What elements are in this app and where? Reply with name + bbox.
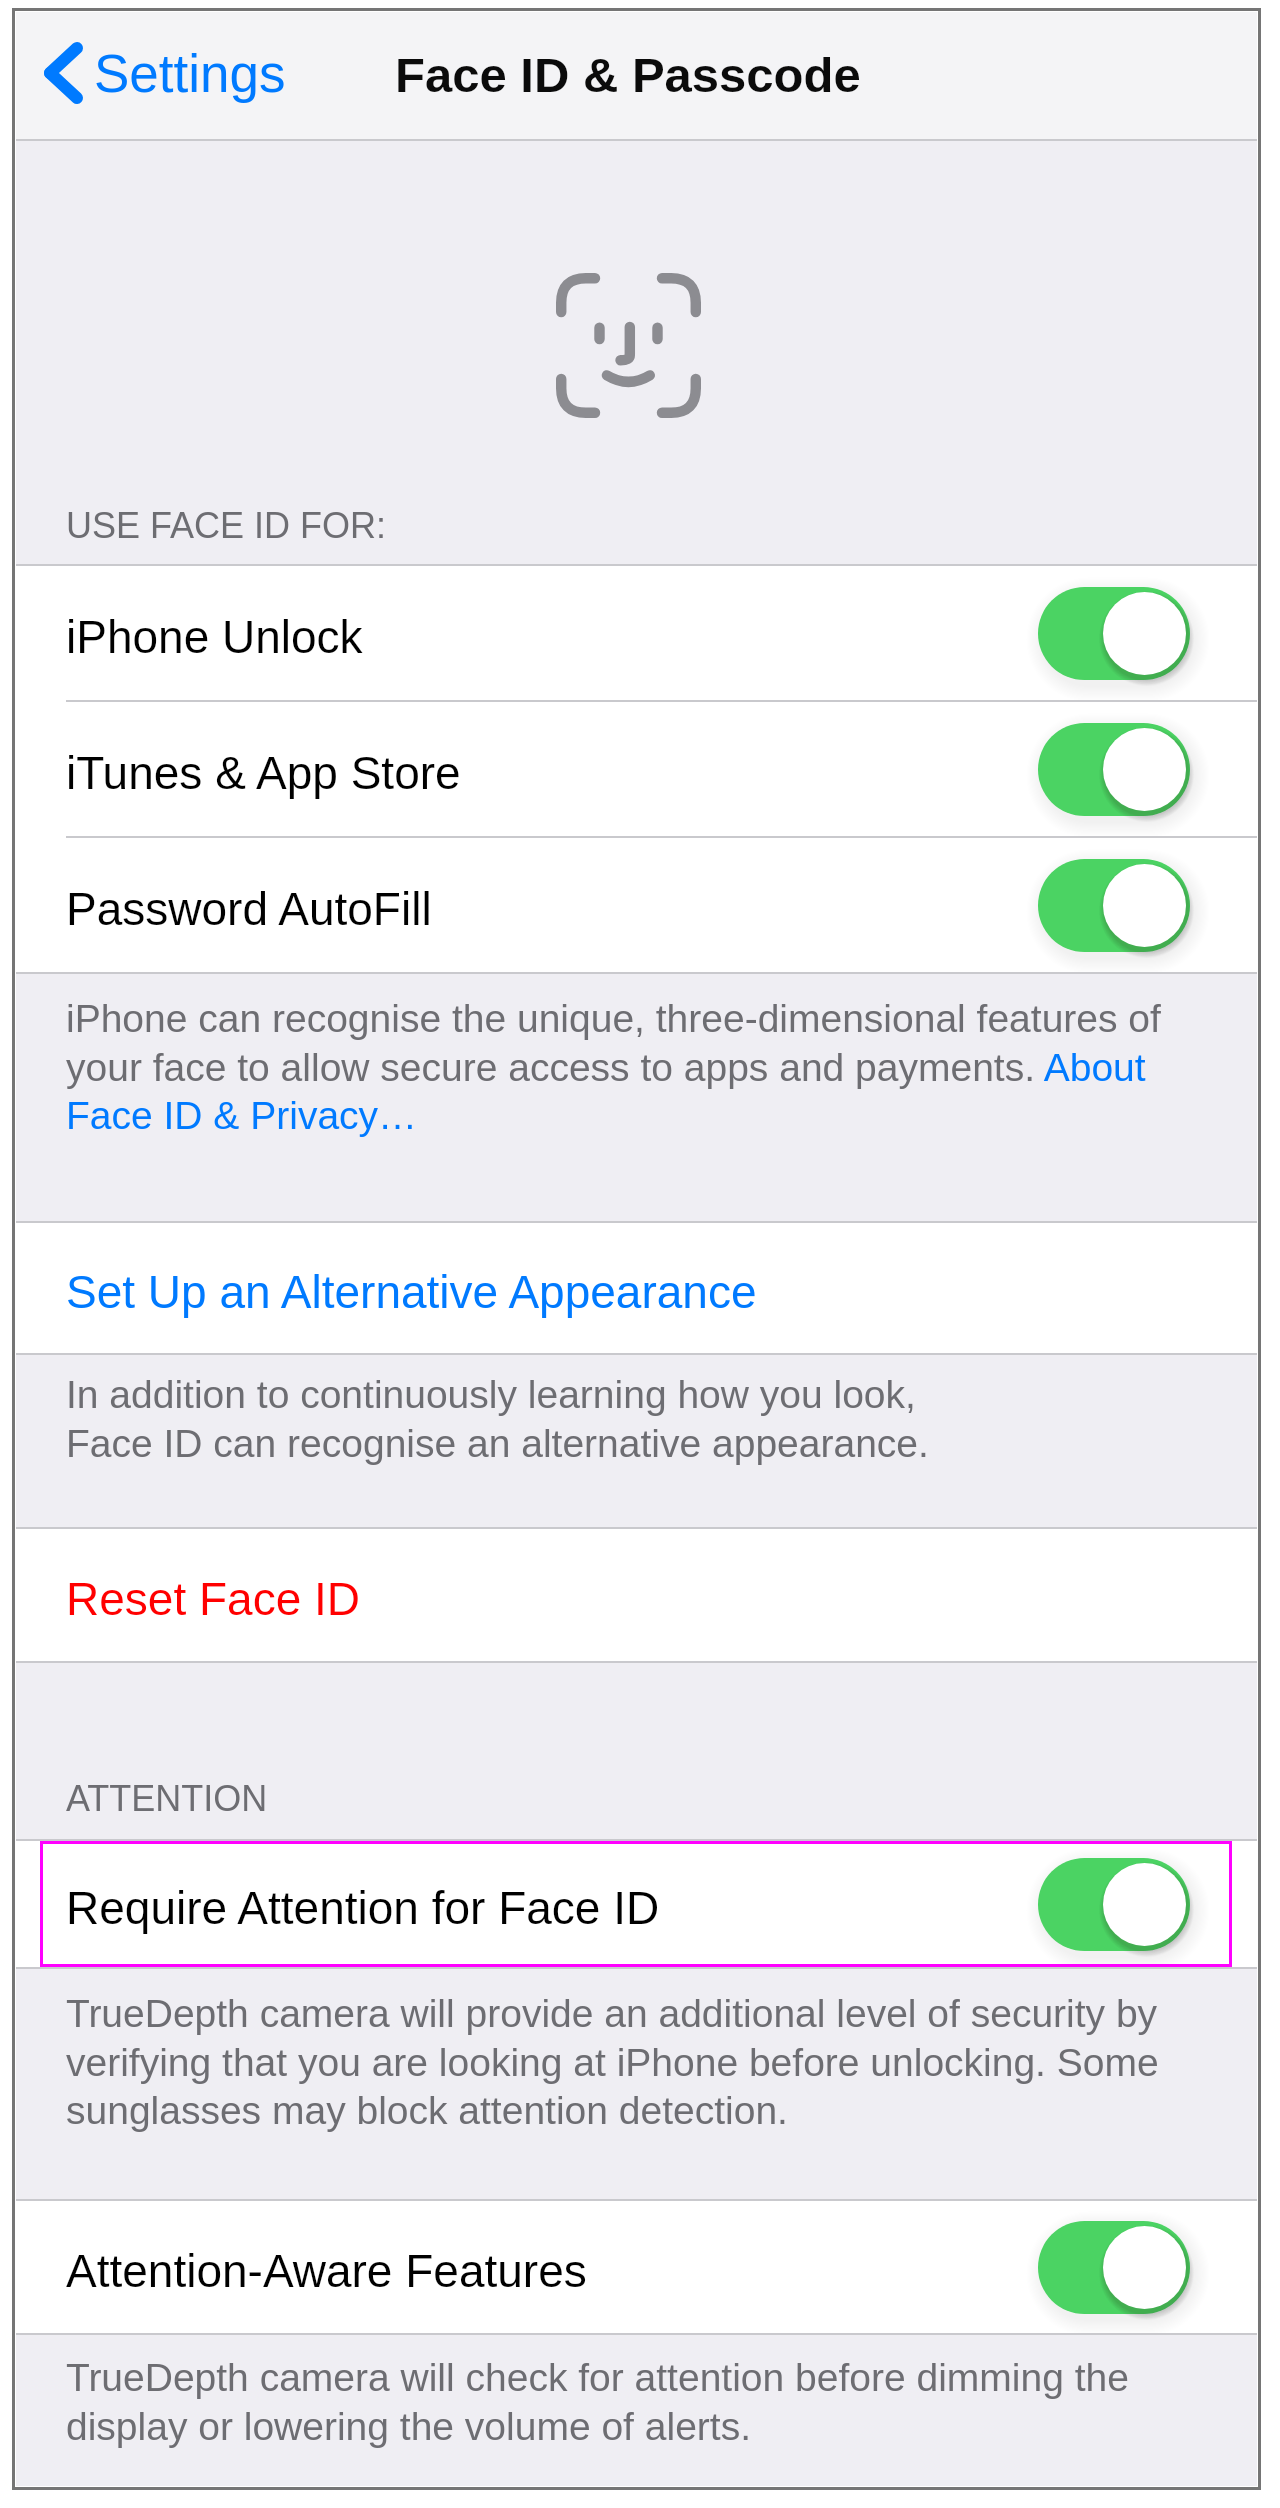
staticText: Password AutoFill xyxy=(66,883,432,934)
staticText: TrueDepth camera will check for attentio… xyxy=(66,2356,1167,2448)
button[interactable]: Require Attention for Face ID xyxy=(16,1841,1257,1967)
staticText: In addition to continuously learning how… xyxy=(66,1373,929,1465)
button[interactable]: iPhone Unlock xyxy=(16,566,1257,700)
button[interactable]: iTunes & App Store xyxy=(16,702,1257,836)
staticText: Reset Face ID xyxy=(66,1573,360,1624)
button[interactable]: Password AutoFill xyxy=(16,838,1257,972)
button[interactable]: Reset Face ID xyxy=(16,1529,1257,1661)
staticText: Set Up an Alternative Appearance xyxy=(66,1266,757,1317)
staticText: Settings xyxy=(94,44,286,103)
staticText: iPhone Unlock xyxy=(66,611,363,662)
staticText: Require Attention for Face ID xyxy=(66,1882,660,1933)
button[interactable]: Back to Settings xyxy=(16,42,302,104)
staticText: Face ID & Passcode xyxy=(395,48,861,103)
staticText: ATTENTION xyxy=(66,1778,268,1818)
staticText: iTunes & App Store xyxy=(66,747,461,798)
staticText: Attention-Aware Features xyxy=(66,2245,587,2296)
staticText: TrueDepth camera will provide an additio… xyxy=(66,1992,1195,2132)
staticText: USE FACE ID FOR: xyxy=(66,505,387,545)
staticText: iPhone can recognise the unique, three-d… xyxy=(66,997,1187,1137)
button[interactable]: Attention-Aware Features xyxy=(16,2201,1257,2333)
button[interactable]: Set Up an Alternative Appearance xyxy=(16,1223,1257,1353)
